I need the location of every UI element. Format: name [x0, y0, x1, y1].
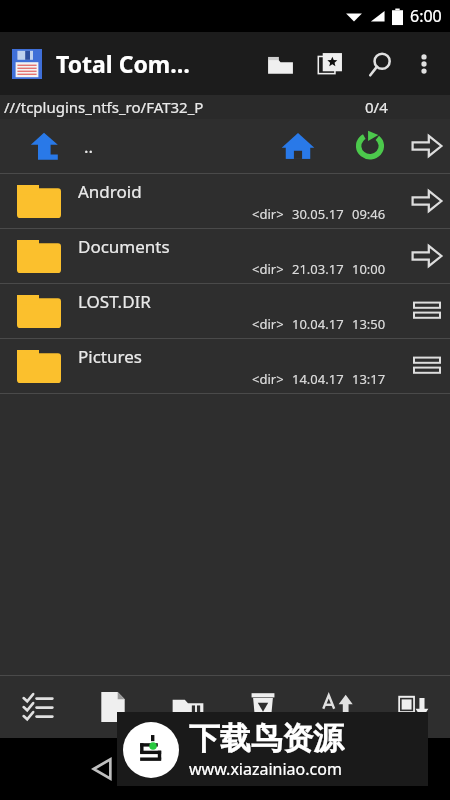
staticText: 13:17	[352, 370, 386, 388]
button[interactable]: Open	[404, 229, 450, 283]
staticText: 10.04.17	[292, 315, 344, 333]
button[interactable]: Options	[404, 339, 450, 393]
button[interactable]: Documents	[0, 229, 450, 283]
staticText: 21.03.17	[292, 260, 344, 278]
staticText: Documents	[78, 235, 170, 258]
staticText: Pictures	[78, 345, 142, 368]
staticText: ///tcplugins_ntfs_ro/FAT32_P	[4, 97, 204, 117]
staticText: 14.04.17	[292, 370, 344, 388]
button[interactable]: Delete	[225, 676, 300, 738]
staticText: 0/4	[365, 97, 388, 117]
staticText: 30.05.17	[292, 205, 344, 223]
button[interactable]: Sort	[300, 676, 375, 738]
staticText: <dir>	[252, 205, 284, 223]
button[interactable]: Back	[80, 747, 124, 791]
staticText: 13:50	[352, 315, 386, 333]
button[interactable]: Options	[404, 284, 450, 338]
staticText: Total Com…	[56, 48, 190, 79]
staticText: ..	[84, 135, 94, 158]
button[interactable]: Bookmarks	[310, 44, 350, 84]
button[interactable]: New folder	[150, 676, 225, 738]
button[interactable]: Scroll right	[406, 125, 448, 167]
staticText: LOST.DIR	[78, 290, 151, 313]
staticText: Android	[78, 180, 142, 203]
button[interactable]: Refresh	[346, 122, 394, 170]
button[interactable]: More options	[404, 44, 444, 84]
staticText: 下载鸟资源	[189, 719, 344, 758]
staticText: 10:00	[352, 260, 386, 278]
button[interactable]: Open folder	[260, 44, 300, 84]
button[interactable]: Up one level	[22, 124, 66, 168]
button[interactable]: LOST.DIR	[0, 284, 450, 338]
button[interactable]: Search	[360, 44, 400, 84]
staticText: <dir>	[252, 315, 284, 333]
staticText: <dir>	[252, 260, 284, 278]
staticText: 09:46	[352, 205, 386, 223]
button[interactable]	[10, 47, 44, 81]
staticText: www.xiazainiao.com	[189, 758, 342, 780]
button[interactable]: New file	[75, 676, 150, 738]
staticText: <dir>	[252, 370, 284, 388]
button[interactable]: Open	[404, 174, 450, 228]
button[interactable]: Properties	[375, 676, 450, 738]
button[interactable]: Home	[274, 122, 322, 170]
button[interactable]: Select all	[0, 676, 75, 738]
staticText: 6:00	[410, 5, 442, 27]
button[interactable]: Android	[0, 174, 450, 228]
button[interactable]: Pictures	[0, 339, 450, 393]
